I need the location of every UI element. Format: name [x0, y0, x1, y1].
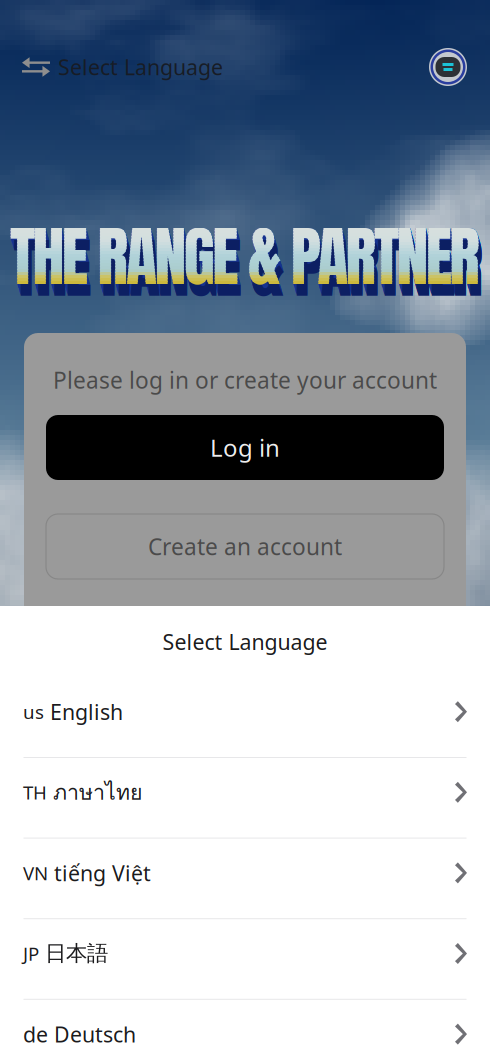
staticText: THE RANGE & PARTNER [10, 209, 480, 305]
staticText: THE RANGE & PARTNER [10, 209, 480, 305]
staticText: THE RANGE & PARTNER [13, 218, 483, 315]
button[interactable]: de [0, 1000, 490, 1063]
button[interactable]: JP [0, 919, 490, 999]
button[interactable]: Profile [428, 47, 468, 87]
staticText: THE RANGE & PARTNER [10, 209, 480, 305]
button[interactable]: us [0, 677, 490, 757]
staticText: Select Language [58, 53, 223, 81]
staticText: THE RANGE & PARTNER [10, 209, 480, 305]
staticText: THE RANGE & PARTNER [10, 210, 480, 306]
staticText: THE RANGE & PARTNER [10, 209, 480, 305]
staticText: THE RANGE & PARTNER [10, 209, 480, 305]
staticText: THE RANGE & PARTNER [10, 209, 480, 305]
staticText: tiếng Việt [54, 859, 151, 887]
staticText: THE RANGE & PARTNER [10, 209, 480, 305]
staticText: Deutsch [54, 1020, 136, 1048]
button[interactable]: Log in [46, 415, 444, 480]
staticText: JP [23, 941, 39, 966]
staticText: Create an account [148, 531, 342, 561]
button[interactable]: VN [0, 839, 490, 918]
staticText: TH [23, 780, 47, 805]
staticText: THE RANGE & PARTNER [10, 209, 480, 305]
staticText: English [50, 697, 123, 726]
staticText: THE RANGE & PARTNER [12, 216, 482, 313]
staticText: THE RANGE & PARTNER [10, 209, 480, 305]
staticText: THE RANGE & PARTNER [11, 214, 482, 310]
staticText: THE RANGE & PARTNER [10, 209, 480, 305]
staticText: THE RANGE & PARTNER [12, 214, 482, 311]
staticText: THE RANGE & PARTNER [11, 213, 481, 309]
staticText: THE RANGE & PARTNER [12, 217, 483, 314]
staticText: THE RANGE & PARTNER [10, 209, 480, 305]
staticText: THE RANGE & PARTNER [13, 220, 484, 317]
staticText: THE RANGE & PARTNER [10, 209, 480, 305]
staticText: THE RANGE & PARTNER [13, 219, 483, 316]
button[interactable]: TH [0, 758, 490, 838]
staticText: Select Language [162, 627, 327, 656]
staticText: THE RANGE & PARTNER [10, 209, 480, 305]
button[interactable]: Create an account [46, 514, 444, 579]
staticText: Log in [210, 432, 280, 463]
staticText: THE RANGE & PARTNER [11, 212, 481, 308]
staticText: 日本語 [45, 940, 108, 967]
staticText: THE RANGE & PARTNER [10, 209, 480, 305]
staticText: us [23, 699, 44, 724]
staticText: THE RANGE & PARTNER [10, 209, 480, 305]
staticText: THE RANGE & PARTNER [11, 211, 481, 307]
staticText: Please log in or create your account [53, 365, 437, 395]
staticText: THE RANGE & PARTNER [10, 209, 480, 305]
staticText: THE RANGE & PARTNER [10, 209, 480, 305]
staticText: THE RANGE & PARTNER [10, 209, 480, 305]
staticText: ภาษาไทย [53, 776, 143, 809]
staticText: de [23, 1020, 48, 1048]
staticText: THE RANGE & PARTNER [10, 209, 480, 305]
staticText: THE RANGE & PARTNER [12, 215, 482, 312]
staticText: VN [23, 860, 48, 885]
staticText: THE RANGE & PARTNER [10, 209, 480, 305]
button[interactable]: Select Language [22, 53, 223, 81]
staticText: THE RANGE & PARTNER [10, 209, 480, 305]
staticText: THE RANGE & PARTNER [10, 209, 480, 305]
